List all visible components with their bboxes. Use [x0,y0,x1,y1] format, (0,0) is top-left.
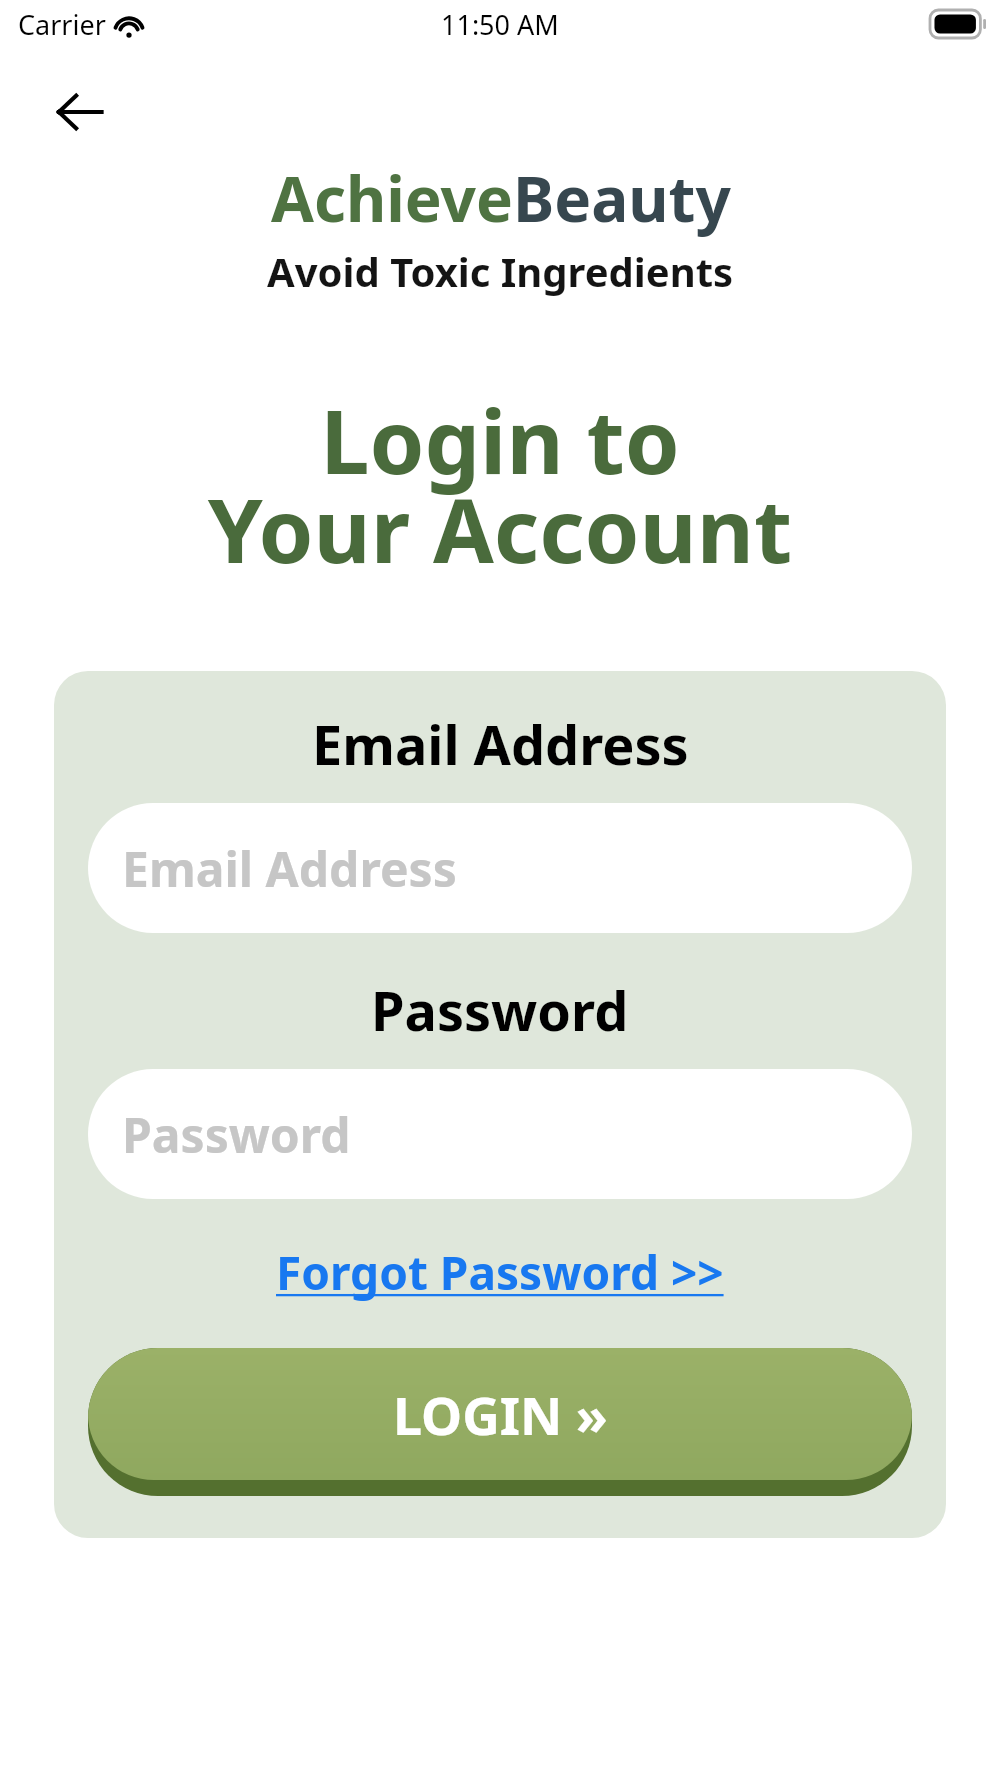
staticText: Email Address [312,707,689,781]
staticText: LOGIN » [393,1379,608,1450]
staticText: Avoid Toxic Ingredients [267,244,734,298]
button[interactable]: Back [44,76,116,148]
button[interactable]: Email Address [88,803,912,933]
button[interactable]: Forgot Password >> [270,1239,730,1306]
staticText: Forgot Password >> [276,1241,724,1304]
staticText: Password [371,973,629,1047]
staticText: Carrier [18,6,106,43]
staticText: Email Address [122,836,457,901]
staticText: 11:50 AM [441,6,559,43]
button[interactable]: Password [88,1069,912,1199]
staticText: AchieveBeauty [271,156,731,240]
button[interactable]: LOGIN » [88,1348,912,1496]
staticText: Password [122,1102,351,1167]
staticText: Login to Your Account [0,380,1000,589]
